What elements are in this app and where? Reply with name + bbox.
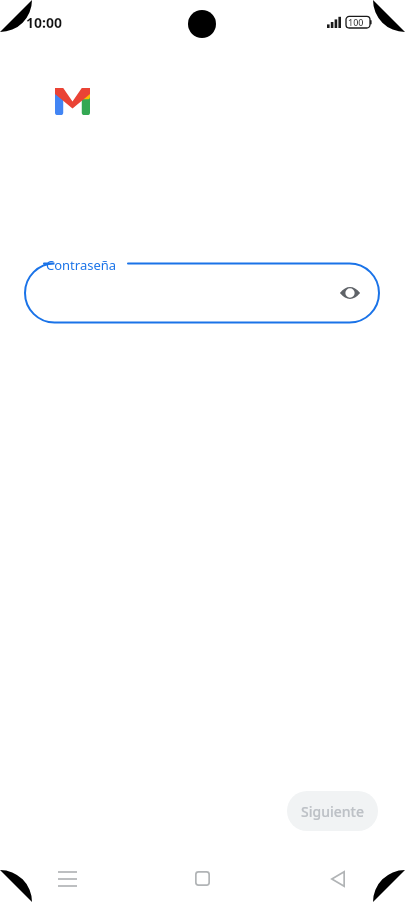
button[interactable]: Siguiente xyxy=(287,791,378,831)
button[interactable]: Inicio xyxy=(135,855,270,902)
staticText: Siguiente xyxy=(301,802,364,821)
staticText: 10:00 xyxy=(26,13,62,32)
button[interactable]: Contraseña xyxy=(24,262,380,324)
staticText: Contraseña xyxy=(46,256,117,274)
button[interactable]: Mostrar contraseña xyxy=(334,277,366,309)
button[interactable]: Recientes xyxy=(0,855,135,902)
button[interactable]: Atrás xyxy=(270,855,405,902)
staticText: 100 xyxy=(348,16,364,28)
